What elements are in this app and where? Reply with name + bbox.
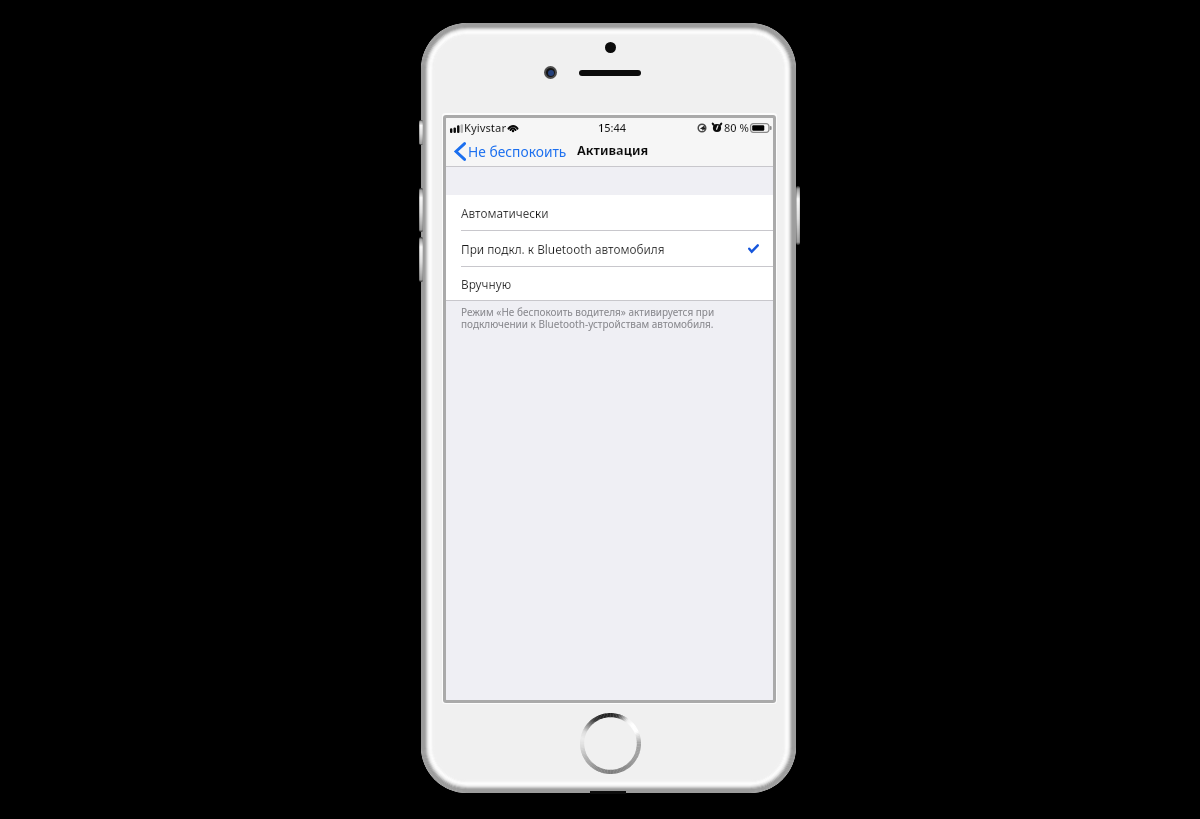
button[interactable]: Home <box>580 713 641 774</box>
staticText: 80 % <box>724 120 749 135</box>
staticText: Kyivstar <box>464 120 507 135</box>
staticText: Режим «Не беспокоить водителя» активируе… <box>461 305 715 331</box>
staticText: Автоматически <box>461 205 549 221</box>
button[interactable]: Не беспокоить <box>446 137 593 166</box>
staticText: Вручную <box>461 276 512 292</box>
staticText: При подкл. к Bluetooth автомобиля <box>461 241 665 257</box>
staticText: Активация <box>577 141 649 158</box>
staticText: Не беспокоить <box>468 142 567 161</box>
staticText: 15:44 <box>598 120 627 135</box>
button[interactable]: Автоматически <box>446 195 773 230</box>
button[interactable]: Вручную <box>446 267 773 300</box>
button[interactable]: При подкл. к Bluetooth автомобиля <box>446 231 773 266</box>
